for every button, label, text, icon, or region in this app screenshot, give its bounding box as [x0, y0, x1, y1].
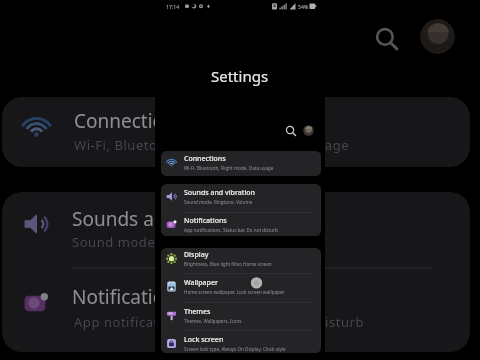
staticText: 54% [298, 3, 309, 10]
staticText: Screen lock type, Always On Display, Clo… [184, 346, 286, 352]
button[interactable] [161, 245, 320, 272]
staticText: Lock screen [184, 335, 224, 345]
button[interactable] [161, 149, 320, 176]
button[interactable] [161, 330, 320, 357]
staticText: 17:14 [166, 3, 180, 10]
button[interactable] [285, 125, 297, 137]
staticText: Brightness, Blue light filter, Home scre… [184, 261, 272, 267]
staticText: Sound mode, Ringtone, Volume [72, 233, 281, 251]
staticText: Notifications [184, 216, 227, 226]
staticText: Wallpaper [184, 278, 218, 288]
staticText: Home screen wallpaper, Lock screen wallp… [184, 289, 285, 295]
staticText: Settings [211, 66, 269, 86]
staticText: Wi-Fi, Bluetooth, Flight mode, Data usag… [184, 165, 274, 171]
staticText: Sounds and vibration [72, 206, 262, 232]
staticText: Wi-Fi, Bluetooth, Flight mode, Data usag… [74, 136, 350, 154]
button[interactable] [161, 273, 320, 300]
staticText: App notifications, Status bar, Do not di… [184, 227, 278, 233]
button[interactable] [161, 183, 320, 210]
button[interactable] [303, 125, 314, 136]
staticText: Connections [184, 154, 226, 164]
staticText: Themes [184, 307, 211, 317]
staticText: Notifications [72, 284, 186, 310]
staticText: Sound mode, Ringtone, Volume [184, 199, 253, 205]
button[interactable] [161, 211, 320, 238]
button[interactable] [161, 302, 320, 329]
staticText: Connections [74, 108, 185, 134]
staticText: App notifications, Status bar, Do not di… [74, 313, 365, 331]
staticText: Sounds and vibration [184, 188, 256, 198]
staticText: Themes, Wallpapers, Icons [184, 318, 242, 324]
staticText: Display [184, 250, 209, 260]
